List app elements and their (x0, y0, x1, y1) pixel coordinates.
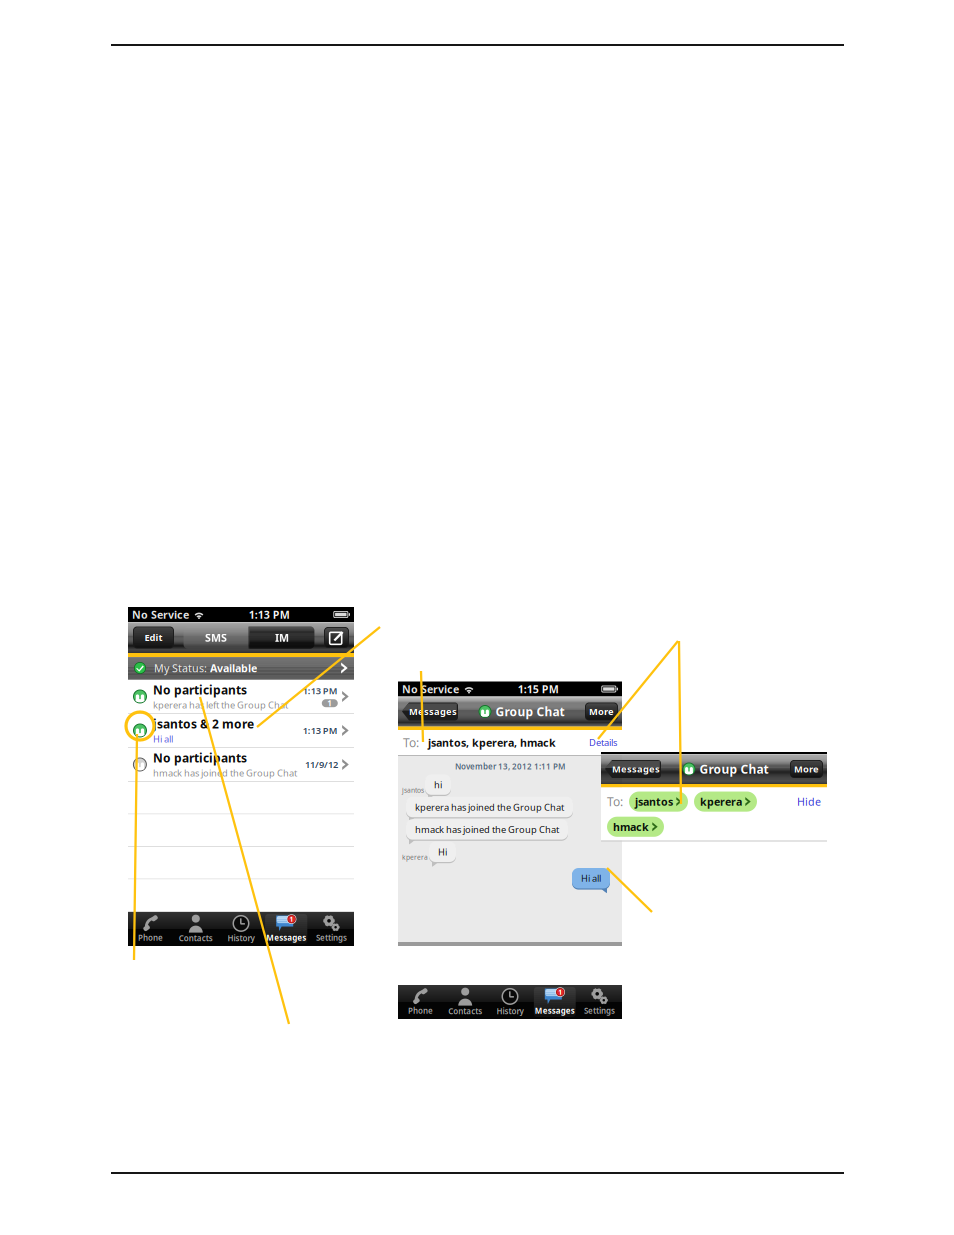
staticText: 1:15 PM (518, 682, 559, 696)
button[interactable]: Messages (605, 760, 661, 778)
staticText: Hi all (581, 873, 601, 886)
staticText: hmack has joined the Group Chat (153, 767, 297, 779)
staticText: Hi all (581, 872, 601, 884)
staticText: 1:13 PM (249, 607, 290, 622)
staticText: November 13, 2012 1:11 PM (455, 761, 565, 772)
staticText: jsantos (402, 786, 424, 795)
staticText: kperera has joined the Group Chat (415, 802, 564, 814)
staticText: No participants (153, 682, 247, 698)
staticText: hmack has joined the Group Chat (415, 824, 559, 837)
staticText: 1:13 PM (303, 684, 338, 697)
staticText: Details (589, 736, 617, 749)
staticText: Hi (438, 847, 447, 859)
button[interactable]: hmack (607, 817, 664, 837)
button[interactable]: IM (249, 626, 314, 648)
staticText: jsantos, kperera, hmack (428, 735, 556, 750)
staticText: More (794, 763, 819, 775)
button[interactable]: Details (589, 736, 617, 749)
button[interactable]: My Status: (128, 657, 354, 679)
staticText: Group Chat (495, 703, 564, 719)
staticText: 1 (558, 988, 562, 997)
staticText: jsantos & 2 more (153, 716, 254, 732)
staticText: Contacts (179, 933, 213, 943)
button[interactable]: jsantos & 2 more (128, 714, 354, 747)
staticText: hi (434, 780, 442, 792)
button[interactable]: SMS (184, 626, 249, 648)
button[interactable]: More (790, 760, 823, 778)
button[interactable]: 1 (264, 912, 309, 946)
staticText: hi (434, 778, 442, 791)
staticText: No participants (153, 750, 247, 766)
staticText: hmack (613, 820, 649, 834)
button[interactable]: jsantos (629, 791, 688, 812)
staticText: 1:13 PM (303, 724, 338, 737)
staticText: Messages (266, 932, 306, 943)
staticText: kperera (700, 794, 742, 809)
staticText: Messages (409, 705, 457, 718)
staticText: Messages (612, 763, 660, 775)
button[interactable]: Phone (128, 912, 173, 946)
button[interactable]: Contacts (443, 985, 488, 1019)
staticText: SMS (205, 630, 227, 645)
staticText: kperera (402, 853, 428, 862)
button[interactable]: More (585, 702, 618, 720)
button[interactable]: Hide (797, 794, 821, 809)
staticText: 1 (290, 915, 294, 924)
button[interactable]: History (218, 912, 264, 946)
staticText: Settings (316, 932, 347, 943)
staticText: History (496, 1006, 523, 1016)
button[interactable]: Messages (402, 702, 458, 720)
staticText: 11/9/12 (305, 758, 338, 771)
staticText: To: (403, 734, 419, 750)
staticText: Messages (535, 1005, 575, 1016)
staticText: Edit (144, 631, 162, 644)
button[interactable]: kperera (694, 791, 757, 812)
staticText: History (227, 933, 254, 943)
staticText: kperera has joined the Group Chat (415, 801, 564, 813)
staticText: Hide (797, 794, 821, 809)
staticText: Contacts (448, 1006, 482, 1016)
button[interactable]: Settings (309, 912, 354, 946)
staticText: 1 (327, 698, 332, 708)
staticText: Available (210, 661, 257, 675)
staticText: jsantos (635, 794, 673, 809)
button[interactable]: Compose message (324, 627, 349, 648)
staticText: Hi all (153, 733, 173, 745)
button[interactable]: History (488, 985, 532, 1019)
staticText: No Service (132, 607, 189, 622)
button[interactable]: Settings (577, 985, 622, 1019)
staticText: hmack has joined the Group Chat (415, 823, 559, 836)
staticText: kperera has left the Group Chat (153, 699, 288, 711)
staticText: Phone (408, 1005, 433, 1016)
button[interactable]: Phone (398, 985, 443, 1019)
button[interactable]: 1 (532, 985, 577, 1019)
staticText: My Status: (154, 661, 210, 675)
staticText: More (589, 705, 614, 718)
staticText: To: (607, 794, 623, 809)
staticText: No Service (402, 682, 459, 696)
staticText: Settings (584, 1005, 615, 1016)
button[interactable]: No participants (128, 680, 354, 713)
staticText: Phone (138, 932, 163, 943)
button[interactable]: No participants (128, 748, 354, 781)
button[interactable]: Edit (133, 626, 174, 648)
button[interactable]: Contacts (173, 912, 218, 946)
staticText: Hi (438, 846, 447, 858)
staticText: IM (275, 630, 289, 645)
staticText: Group Chat (699, 761, 768, 777)
